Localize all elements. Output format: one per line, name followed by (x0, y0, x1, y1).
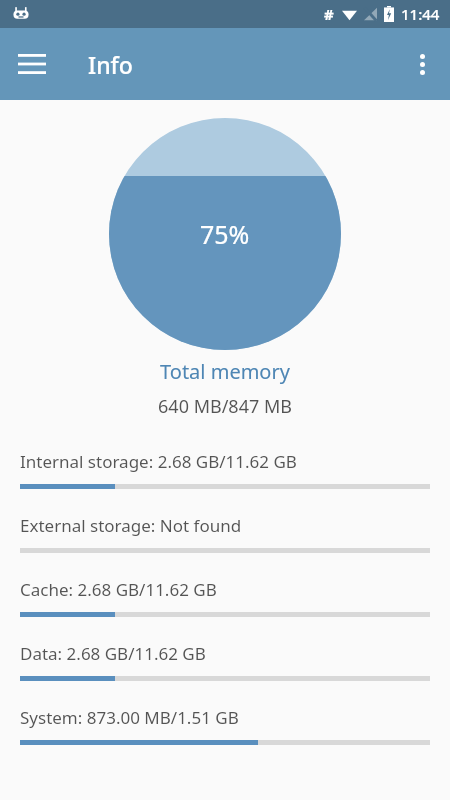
staticText: Data: 2.68 GB/11.62 GB (20, 642, 206, 665)
staticText: 640 MB/847 MB (0, 394, 450, 419)
staticText: System: 873.00 MB/1.51 GB (20, 706, 239, 729)
button[interactable]: Internal storage: 2.68 GB/11.62 GB (0, 437, 450, 501)
button[interactable]: System: 873.00 MB/1.51 GB (0, 693, 450, 757)
button[interactable]: Open navigation menu (8, 40, 56, 88)
staticText: External storage: Not found (20, 514, 242, 537)
staticText: Cache: 2.68 GB/11.62 GB (20, 578, 217, 601)
staticText: Info (88, 49, 133, 80)
button[interactable]: Data: 2.68 GB/11.62 GB (0, 629, 450, 693)
button[interactable]: Cache: 2.68 GB/11.62 GB (0, 565, 450, 629)
staticText: # (324, 4, 334, 24)
staticText: Total memory (0, 358, 450, 385)
button[interactable]: Total memory 75 percent used (109, 118, 341, 350)
staticText: 75% (200, 217, 250, 251)
button[interactable]: More options (398, 40, 446, 88)
staticText: 11:44 (401, 4, 440, 24)
button[interactable]: External storage: Not found (0, 501, 450, 565)
staticText: Internal storage: 2.68 GB/11.62 GB (20, 450, 297, 473)
